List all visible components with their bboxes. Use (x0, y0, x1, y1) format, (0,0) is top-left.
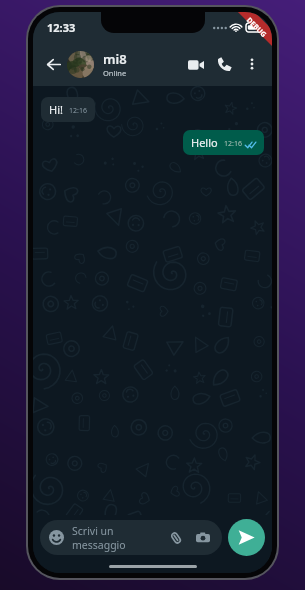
staticText: Scrivi un messaggio (72, 524, 166, 552)
button[interactable]: Voice call (210, 50, 239, 79)
staticText: Online (103, 68, 127, 78)
staticText: Hello (191, 135, 218, 150)
button[interactable]: mi8 (67, 50, 181, 78)
staticText: 12:16 (69, 106, 87, 116)
button[interactable] (67, 51, 94, 78)
staticText: mi8 (103, 50, 127, 68)
button[interactable]: Camera (193, 528, 213, 548)
button[interactable]: Scrivi un messaggio (40, 520, 222, 555)
button[interactable]: More options (239, 51, 265, 77)
button[interactable]: Hello (183, 130, 264, 155)
staticText: 12:33 (47, 20, 76, 35)
staticText: 12:16 (224, 139, 242, 149)
button[interactable]: Back (40, 51, 66, 77)
staticText: Hi! (49, 102, 63, 117)
button[interactable]: Attach (166, 528, 186, 548)
button[interactable]: Hi! (41, 97, 95, 122)
button[interactable]: Send (228, 519, 265, 556)
staticText: DEBUG (244, 16, 269, 40)
button[interactable]: Video call (181, 50, 210, 79)
